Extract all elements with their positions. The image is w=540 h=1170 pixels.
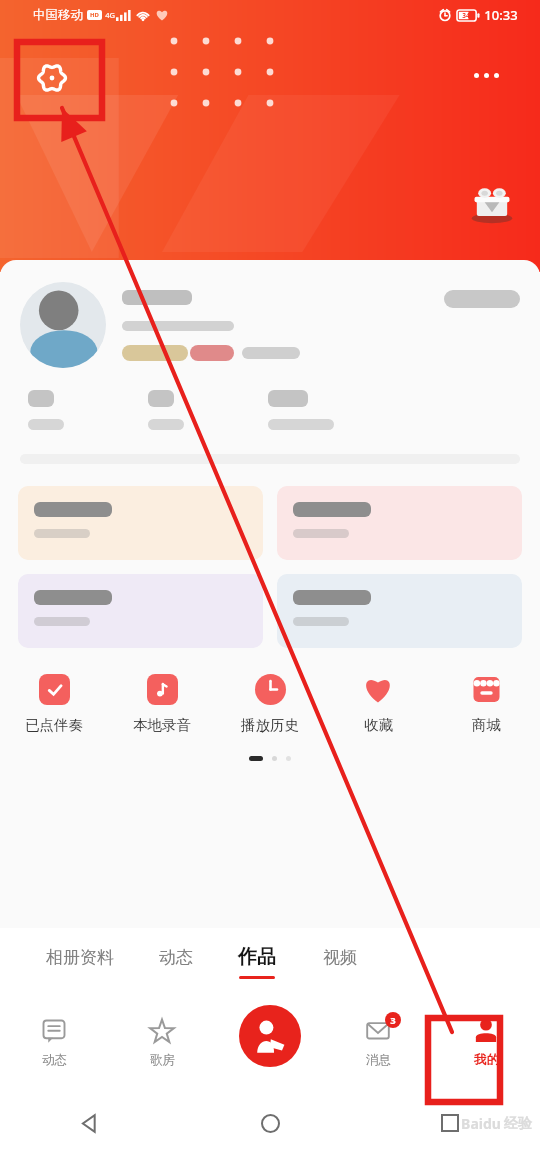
staticText: 消息 bbox=[366, 1052, 391, 1068]
button[interactable] bbox=[148, 390, 268, 430]
button[interactable]: Gift bbox=[466, 178, 518, 230]
staticText: 动态 bbox=[42, 1052, 67, 1068]
button[interactable]: Sing bbox=[239, 1005, 301, 1067]
staticText: 本地录音 bbox=[133, 716, 191, 734]
staticText: 相册资料 bbox=[46, 947, 114, 968]
staticText: HD bbox=[90, 11, 99, 19]
staticText: 中国移动 bbox=[33, 7, 83, 23]
button[interactable]: 播放历史 bbox=[222, 668, 318, 738]
button[interactable]: Recents bbox=[430, 1103, 470, 1143]
staticText: 收藏 bbox=[364, 716, 393, 734]
staticText: 歌房 bbox=[150, 1052, 175, 1068]
button[interactable]: More options bbox=[474, 60, 518, 90]
button[interactable]: 相册资料 bbox=[22, 932, 138, 992]
staticText: 10:33 bbox=[484, 6, 518, 24]
staticText: 经验 bbox=[504, 1115, 532, 1133]
staticText: 作品 bbox=[238, 945, 276, 969]
staticText: 商城 bbox=[472, 716, 501, 734]
staticText: 3 bbox=[390, 1014, 396, 1027]
button[interactable] bbox=[277, 574, 522, 648]
button[interactable]: 歌房 bbox=[108, 996, 216, 1088]
staticText: 已点伴奏 bbox=[25, 716, 83, 734]
staticText: 我的 bbox=[474, 1052, 499, 1068]
button[interactable] bbox=[28, 390, 148, 430]
staticText: 34 bbox=[462, 11, 470, 20]
button[interactable] bbox=[277, 486, 522, 560]
button[interactable]: 商城 bbox=[438, 668, 534, 738]
button[interactable] bbox=[268, 390, 418, 430]
button[interactable]: Avatar bbox=[20, 282, 106, 368]
staticText: 播放历史 bbox=[241, 716, 299, 734]
button[interactable]: Home bbox=[250, 1103, 290, 1143]
staticText: 4G bbox=[105, 10, 115, 20]
button[interactable]: 3 bbox=[324, 996, 432, 1088]
staticText: Baidu bbox=[461, 1114, 501, 1133]
button[interactable]: 已点伴奏 bbox=[6, 668, 102, 738]
button[interactable]: 动态 bbox=[0, 996, 108, 1088]
staticText: 动态 bbox=[159, 947, 193, 968]
button[interactable] bbox=[18, 486, 263, 560]
button[interactable] bbox=[18, 574, 263, 648]
staticText: 视频 bbox=[323, 947, 357, 968]
button[interactable]: Back bbox=[70, 1103, 110, 1143]
button[interactable]: 收藏 bbox=[330, 668, 426, 738]
button[interactable]: 作品 bbox=[214, 932, 300, 992]
button[interactable]: 我的 bbox=[432, 996, 540, 1088]
button[interactable]: 本地录音 bbox=[114, 668, 210, 738]
button[interactable]: 动态 bbox=[138, 932, 214, 992]
button[interactable]: 视频 bbox=[300, 932, 380, 992]
button[interactable]: Settings bbox=[24, 50, 80, 106]
